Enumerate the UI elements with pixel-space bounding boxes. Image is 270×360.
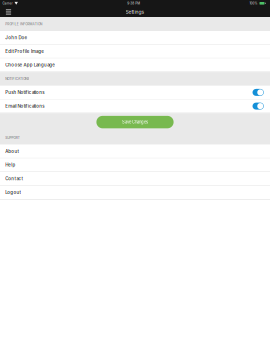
button[interactable]: John Doe bbox=[0, 31, 270, 45]
staticText: Logout bbox=[5, 190, 20, 195]
button[interactable]: Email Notifications bbox=[0, 99, 270, 113]
staticText: Save Changes bbox=[122, 120, 148, 125]
button[interactable]: Choose App Language bbox=[0, 58, 270, 72]
staticText: SUPPORT bbox=[5, 136, 20, 140]
staticText: Edit Profile Image bbox=[5, 49, 44, 54]
button[interactable]: Menu bbox=[4, 7, 13, 17]
button[interactable]: Help bbox=[0, 158, 270, 172]
button[interactable]: Logout bbox=[0, 186, 270, 199]
staticText: NOTIFICATIONS bbox=[5, 77, 29, 81]
staticText: Carrier bbox=[2, 1, 12, 5]
button[interactable]: About bbox=[0, 145, 270, 158]
staticText: Help bbox=[5, 162, 15, 168]
button[interactable]: Edit Profile Image bbox=[0, 45, 270, 58]
staticText: 9:38 PM bbox=[127, 1, 140, 5]
staticText: Email Notifications bbox=[5, 103, 44, 109]
staticText: Contact bbox=[5, 176, 23, 181]
staticText: Settings bbox=[125, 9, 144, 15]
staticText: Push Notifications bbox=[5, 90, 44, 95]
staticText: About bbox=[5, 149, 18, 154]
staticText: 100% bbox=[249, 1, 257, 5]
button[interactable]: Contact bbox=[0, 172, 270, 186]
button[interactable]: Save Changes bbox=[96, 116, 174, 128]
staticText: Choose App Language bbox=[5, 62, 55, 68]
button[interactable]: Push Notifications bbox=[0, 86, 270, 99]
staticText: John Doe bbox=[5, 35, 28, 40]
staticText: PROFILE INFORMATION bbox=[5, 22, 42, 26]
